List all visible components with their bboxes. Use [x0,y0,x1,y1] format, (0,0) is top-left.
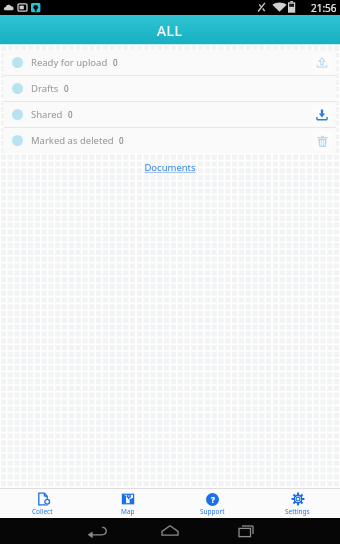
staticText: Documents [144,161,196,174]
staticText: Support [200,507,225,516]
button[interactable]: Download [312,105,332,125]
button[interactable]: Documents [138,159,202,176]
button[interactable]: Drafts [4,76,336,101]
button[interactable]: Delete [312,131,332,151]
staticText: 0 [68,109,73,120]
staticText: Settings [285,507,310,516]
staticText: ALL [157,21,183,40]
button[interactable]: ? [170,491,255,517]
staticText: Ready for upload [31,56,108,69]
button[interactable]: Collect [0,490,85,517]
staticText: Shared [31,108,63,121]
button[interactable]: Shared [4,102,336,127]
staticText: 21:56 [311,1,337,15]
button[interactable]: Map [85,490,170,517]
staticText: Marked as deleted [31,134,114,147]
staticText: 0 [119,135,124,146]
staticText: Collect [32,507,53,516]
staticText: 0 [113,57,118,68]
staticText: Drafts [31,82,59,95]
button[interactable]: Ready for upload [4,50,336,75]
staticText: 0 [64,83,69,94]
button[interactable]: Settings [255,490,340,517]
staticText: Map [121,507,135,516]
staticText: ? [211,494,215,505]
button[interactable]: Marked as deleted [4,128,336,153]
button[interactable]: Upload [312,53,332,73]
